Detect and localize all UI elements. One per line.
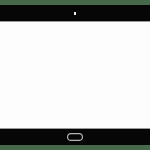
button[interactable]: Home xyxy=(67,133,83,141)
